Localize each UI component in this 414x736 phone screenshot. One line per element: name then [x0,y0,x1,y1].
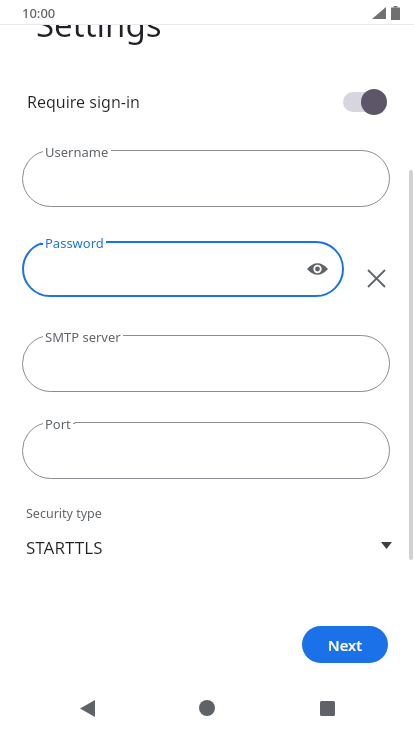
button[interactable]: Next [302,626,388,663]
staticText: 10:00 [22,4,56,22]
staticText: Username [45,143,109,161]
button[interactable]: Username [22,150,390,207]
button[interactable]: Recent apps [307,688,347,728]
button[interactable]: Security type [0,505,414,567]
staticText: SMTP server [45,328,121,346]
button[interactable]: Clear password [358,260,394,296]
button[interactable]: Require sign-in toggle [343,86,395,118]
staticText: Password [45,234,104,252]
staticText: STARTTLS [26,536,103,559]
button[interactable]: SMTP server [22,335,390,392]
button[interactable]: Port [22,422,390,479]
staticText: Next [328,635,362,655]
staticText: Require sign-in [27,91,140,113]
staticText: Security type [26,505,102,522]
button[interactable]: Show password [304,256,330,282]
button[interactable]: Require sign-in [0,82,414,122]
button[interactable]: Home [187,688,227,728]
staticText: Settings [36,2,162,47]
button[interactable]: Password [22,241,344,297]
staticText: Port [45,415,71,433]
button[interactable]: Back [67,688,107,728]
